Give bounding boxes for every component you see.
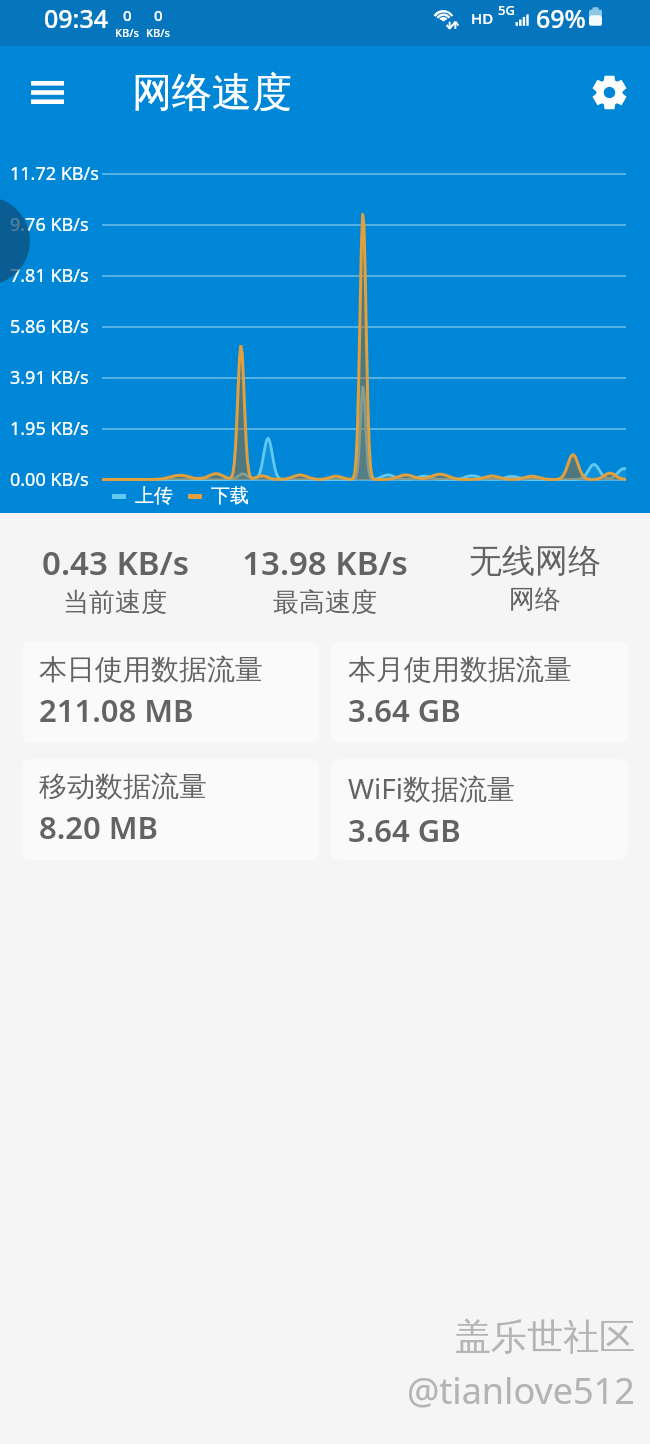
staticText: 3.91 KB/s bbox=[10, 365, 89, 390]
staticText: 网络速度 bbox=[132, 67, 292, 117]
button[interactable]: 移动数据流量 bbox=[22, 759, 319, 860]
staticText: 移动数据流量 bbox=[39, 769, 207, 804]
staticText: @tianlove512 bbox=[407, 1366, 635, 1415]
staticText: WiFi数据流量 bbox=[348, 769, 516, 807]
staticText: 11.72 KB/s bbox=[10, 161, 99, 186]
staticText: 盖乐世社区 bbox=[455, 1314, 635, 1359]
button[interactable]: 0.43 KB/s bbox=[10, 540, 220, 619]
staticText: 0 bbox=[154, 5, 163, 25]
staticText: 本日使用数据流量 bbox=[39, 652, 263, 687]
staticText: 13.98 KB/s bbox=[242, 540, 408, 585]
staticText: 下载 bbox=[211, 484, 249, 508]
staticText: 最高速度 bbox=[273, 586, 377, 619]
staticText: 当前速度 bbox=[63, 586, 167, 619]
button[interactable]: Settings bbox=[581, 64, 637, 120]
staticText: 211.08 MB bbox=[39, 689, 194, 731]
button[interactable]: WiFi数据流量 bbox=[331, 759, 628, 860]
staticText: 0 bbox=[123, 5, 132, 25]
staticText: 网络 bbox=[509, 583, 561, 616]
button[interactable]: 无线网络 bbox=[430, 540, 640, 616]
staticText: 7.81 KB/s bbox=[10, 263, 89, 288]
staticText: 9.76 KB/s bbox=[10, 212, 89, 237]
button[interactable]: 13.98 KB/s bbox=[220, 540, 430, 619]
staticText: 5.86 KB/s bbox=[10, 314, 89, 339]
button[interactable]: Menu bbox=[21, 66, 73, 118]
staticText: HD bbox=[471, 8, 494, 28]
staticText: 0.43 KB/s bbox=[42, 540, 189, 585]
staticText: 无线网络 bbox=[469, 540, 601, 582]
staticText: 0.00 KB/s bbox=[10, 467, 89, 492]
staticText: 5G bbox=[498, 1, 515, 19]
staticText: 3.64 GB bbox=[348, 689, 461, 731]
staticText: 3.64 GB bbox=[348, 809, 461, 851]
button[interactable]: 本日使用数据流量 bbox=[22, 642, 319, 743]
staticText: 1.95 KB/s bbox=[10, 416, 89, 441]
staticText: 09:34 bbox=[44, 1, 109, 35]
staticText: 本月使用数据流量 bbox=[348, 652, 572, 687]
staticText: KB/s bbox=[146, 25, 170, 40]
staticText: KB/s bbox=[115, 25, 139, 40]
button[interactable]: 本月使用数据流量 bbox=[331, 642, 628, 743]
staticText: 69% bbox=[536, 1, 586, 35]
staticText: 上传 bbox=[135, 484, 173, 508]
staticText: 8.20 MB bbox=[39, 806, 159, 848]
